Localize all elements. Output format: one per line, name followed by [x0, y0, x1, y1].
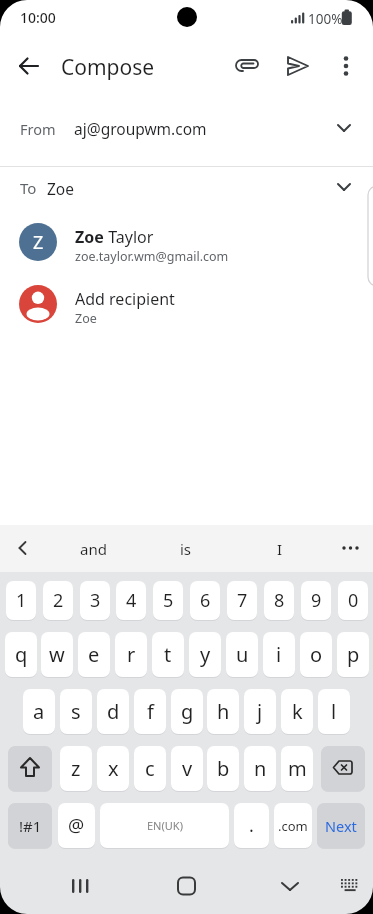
- staticText: y: [200, 641, 211, 668]
- staticText: s: [71, 698, 81, 725]
- button[interactable]: e: [78, 632, 110, 677]
- button[interactable]: [334, 531, 368, 565]
- button[interactable]: [280, 48, 316, 84]
- staticText: t: [164, 641, 172, 668]
- button[interactable]: [10, 48, 48, 86]
- button[interactable]: @: [58, 803, 95, 848]
- button[interactable]: 7: [227, 581, 257, 620]
- staticText: w: [49, 641, 65, 668]
- button[interactable]: g: [171, 689, 203, 734]
- button[interactable]: z: [60, 746, 92, 791]
- button[interactable]: [8, 746, 52, 791]
- staticText: 8: [274, 588, 285, 613]
- staticText: j: [257, 698, 263, 725]
- button[interactable]: 9: [301, 581, 331, 620]
- staticText: 9: [311, 588, 322, 613]
- staticText: Next: [325, 816, 357, 836]
- staticText: Zoe: [75, 226, 104, 248]
- button[interactable]: b: [207, 746, 239, 791]
- button[interactable]: [6, 531, 40, 565]
- staticText: Z: [33, 230, 44, 255]
- button[interactable]: j: [244, 689, 276, 734]
- button[interactable]: h: [207, 689, 239, 734]
- button[interactable]: Next: [317, 803, 365, 848]
- staticText: Zoe: [75, 310, 97, 327]
- button[interactable]: .com: [274, 803, 312, 848]
- button[interactable]: 4: [116, 581, 146, 620]
- staticText: d: [107, 698, 120, 725]
- button[interactable]: c: [134, 746, 166, 791]
- staticText: b: [217, 755, 230, 782]
- button[interactable]: w: [41, 632, 73, 677]
- button[interactable]: .: [234, 803, 269, 848]
- button[interactable]: [100, 803, 229, 848]
- button[interactable]: i: [263, 632, 295, 677]
- staticText: Add recipient: [75, 288, 175, 310]
- staticText: i: [276, 641, 282, 668]
- button[interactable]: [58, 866, 102, 906]
- staticText: and: [80, 539, 107, 559]
- button[interactable]: is: [143, 527, 229, 570]
- button[interactable]: k: [281, 689, 313, 734]
- button[interactable]: 2: [43, 581, 73, 620]
- button[interactable]: 1: [6, 581, 36, 620]
- staticText: a: [33, 698, 45, 725]
- button[interactable]: r: [115, 632, 147, 677]
- button[interactable]: 3: [80, 581, 110, 620]
- staticText: Compose: [61, 53, 155, 82]
- staticText: f: [147, 698, 154, 725]
- staticText: o: [310, 641, 323, 668]
- button[interactable]: u: [226, 632, 258, 677]
- staticText: k: [292, 698, 303, 725]
- button[interactable]: [164, 866, 208, 906]
- button[interactable]: l: [318, 689, 350, 734]
- button[interactable]: [0, 215, 368, 270]
- button[interactable]: 6: [190, 581, 220, 620]
- button[interactable]: p: [337, 632, 369, 677]
- button[interactable]: q: [5, 632, 37, 677]
- staticText: x: [108, 755, 119, 782]
- staticText: e: [88, 641, 100, 668]
- button[interactable]: [0, 167, 373, 207]
- button[interactable]: [328, 48, 364, 84]
- button[interactable]: [0, 100, 373, 157]
- button[interactable]: m: [281, 746, 313, 791]
- staticText: p: [347, 641, 360, 668]
- staticText: 6: [200, 588, 211, 613]
- staticText: g: [181, 698, 194, 725]
- button[interactable]: and: [50, 527, 136, 570]
- staticText: 5: [163, 588, 174, 613]
- staticText: n: [254, 755, 267, 782]
- button[interactable]: I: [237, 527, 323, 570]
- button[interactable]: a: [23, 689, 55, 734]
- button[interactable]: n: [244, 746, 276, 791]
- button[interactable]: 5: [153, 581, 183, 620]
- button[interactable]: [0, 277, 368, 332]
- staticText: Taylor: [104, 226, 154, 248]
- button[interactable]: s: [60, 689, 92, 734]
- button[interactable]: [230, 48, 266, 84]
- button[interactable]: 0: [338, 581, 368, 620]
- button[interactable]: d: [97, 689, 129, 734]
- staticText: u: [236, 641, 249, 668]
- staticText: .com: [278, 817, 308, 835]
- button[interactable]: o: [300, 632, 332, 677]
- button[interactable]: [332, 866, 368, 906]
- staticText: 100%: [308, 10, 343, 28]
- button[interactable]: [268, 866, 312, 906]
- staticText: zoe.taylor.wm@gmail.com: [75, 248, 229, 265]
- staticText: I: [277, 539, 283, 559]
- staticText: 1: [16, 588, 27, 613]
- button[interactable]: 8: [264, 581, 294, 620]
- button[interactable]: x: [97, 746, 129, 791]
- button[interactable]: t: [152, 632, 184, 677]
- staticText: h: [217, 698, 230, 725]
- staticText: .: [249, 813, 254, 838]
- staticText: 3: [90, 588, 101, 613]
- button[interactable]: f: [134, 689, 166, 734]
- button[interactable]: v: [171, 746, 203, 791]
- button[interactable]: !#1: [8, 803, 52, 848]
- button[interactable]: [321, 746, 365, 791]
- button[interactable]: y: [189, 632, 221, 677]
- staticText: q: [15, 641, 28, 668]
